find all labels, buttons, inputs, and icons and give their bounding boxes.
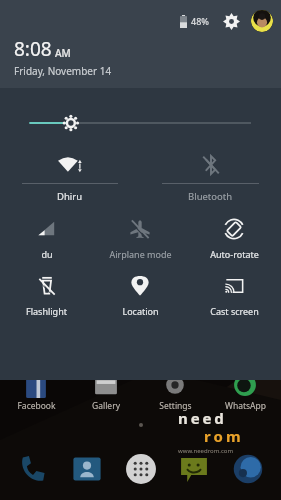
staticText: www.needrom.com: [178, 447, 234, 455]
button[interactable]: Browser: [227, 448, 269, 490]
staticText: Flashlight: [26, 305, 67, 317]
staticText: AM: [55, 46, 71, 60]
button[interactable]: Facebook: [3, 372, 69, 412]
button[interactable]: Cast screen: [191, 274, 277, 317]
staticText: 48%: [191, 15, 209, 27]
staticText: Location: [122, 305, 159, 317]
button[interactable]: [30, 110, 251, 136]
button[interactable]: Bluetooth: [162, 152, 259, 203]
staticText: n e e d: [178, 408, 224, 428]
staticText: Facebook: [17, 400, 56, 412]
button[interactable]: User profile: [251, 10, 273, 32]
button[interactable]: Dhiru: [22, 152, 118, 203]
button[interactable]: Phone: [12, 448, 54, 490]
button[interactable]: Contacts: [66, 448, 108, 490]
button[interactable]: du: [4, 217, 89, 260]
button[interactable]: Settings: [221, 11, 241, 31]
staticText: Friday, November 14: [14, 64, 112, 78]
staticText: du: [41, 248, 53, 260]
button[interactable]: Auto-rotate: [191, 217, 277, 260]
button[interactable]: All apps: [120, 448, 162, 490]
button[interactable]: WhatsApp: [212, 372, 278, 412]
staticText: Settings: [159, 400, 192, 412]
button[interactable]: Airplane mode: [97, 217, 183, 260]
staticText: Gallery: [92, 400, 120, 412]
button[interactable]: Settings: [142, 372, 208, 412]
button[interactable]: Gallery: [73, 372, 139, 412]
button[interactable]: Flashlight: [4, 274, 89, 317]
staticText: Cast screen: [210, 305, 259, 317]
staticText: Dhiru: [57, 190, 83, 203]
button[interactable]: Location: [97, 274, 183, 317]
staticText: r o m: [204, 426, 241, 446]
button[interactable]: Messaging: [173, 448, 215, 490]
button[interactable]: 8:08: [14, 36, 112, 78]
staticText: WhatsApp: [225, 400, 266, 412]
staticText: Auto-rotate: [210, 248, 259, 260]
staticText: 8:08: [14, 36, 52, 62]
staticText: Airplane mode: [109, 248, 172, 260]
staticText: Bluetooth: [188, 190, 233, 203]
